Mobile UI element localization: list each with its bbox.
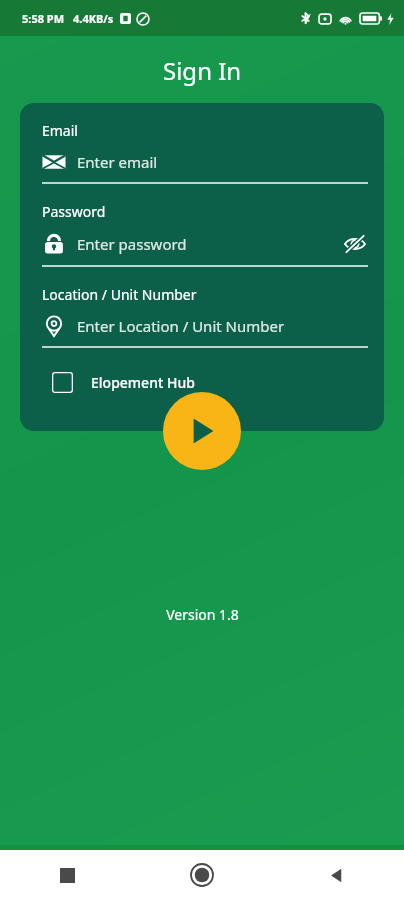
button[interactable]: Back [269, 850, 404, 900]
button[interactable]: Elopement Hub [32, 368, 207, 397]
button[interactable]: Location / Unit Number [32, 285, 376, 348]
staticText: Password [42, 202, 106, 221]
staticText: Enter email [77, 152, 158, 172]
staticText: Location / Unit Number [42, 285, 197, 304]
staticText: 5:58 PM [22, 11, 65, 26]
button[interactable]: Home [134, 850, 269, 900]
button[interactable]: Recents [0, 850, 134, 900]
button[interactable]: Password [32, 202, 376, 267]
staticText: 4.4KB/s [73, 11, 114, 26]
staticText: Sign In [163, 54, 242, 87]
staticText: Version 1.8 [166, 605, 239, 624]
button[interactable]: Sign in [163, 392, 241, 470]
other: Email [42, 150, 66, 174]
other: Password [42, 232, 66, 256]
button[interactable]: Email [32, 121, 376, 184]
staticText: Elopement Hub [91, 373, 195, 392]
button[interactable]: Show password [342, 231, 368, 257]
other: Location [42, 314, 66, 338]
staticText: Email [42, 121, 78, 140]
staticText: Enter Location / Unit Number [77, 316, 285, 336]
staticText: Enter password [77, 234, 187, 254]
